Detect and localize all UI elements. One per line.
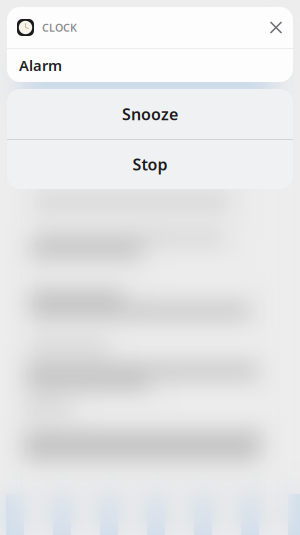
staticText: Snooze [122,103,178,125]
staticText: CLOCK [42,20,77,35]
staticText: Alarm [19,56,62,75]
button[interactable]: Stop [7,140,293,189]
button[interactable]: Close notification [259,10,293,44]
staticText: Stop [132,154,167,175]
button[interactable]: Snooze [7,89,293,139]
